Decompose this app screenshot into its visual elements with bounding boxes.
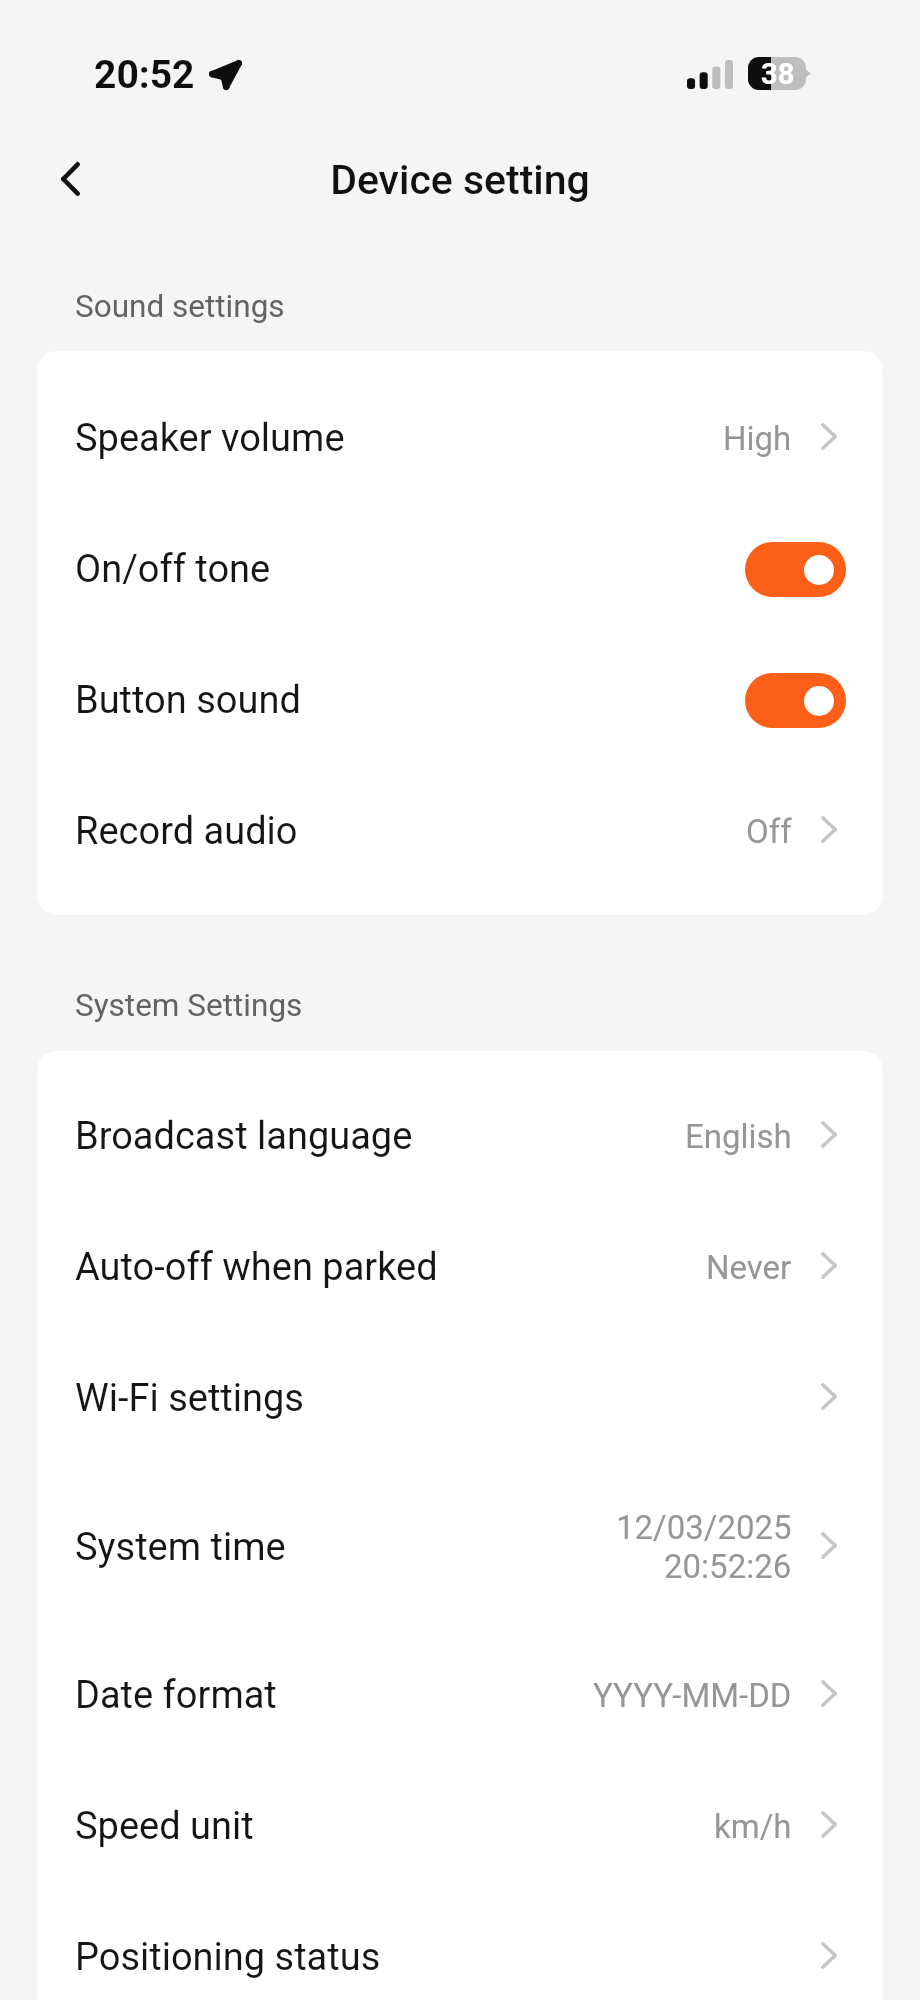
staticText: English [685, 1117, 792, 1156]
button[interactable]: On/off tone [37, 504, 883, 635]
staticText: Speaker volume [75, 416, 345, 461]
staticText: On/off tone [75, 547, 271, 592]
staticText: Off [746, 812, 792, 851]
staticText: 20:52:26 [664, 1547, 792, 1586]
staticText: Broadcast language [75, 1114, 413, 1159]
staticText: Positioning status [75, 1935, 381, 1980]
button[interactable]: Auto-off when parked [37, 1202, 883, 1333]
button[interactable]: Wi-Fi settings [37, 1333, 883, 1464]
staticText: Record audio [75, 809, 298, 854]
staticText: Speed unit [75, 1804, 254, 1849]
button[interactable]: Back [44, 154, 96, 206]
staticText: Auto-off when parked [75, 1245, 438, 1290]
staticText: System time [75, 1525, 286, 1570]
staticText: High [723, 419, 792, 458]
staticText: Date format [75, 1673, 277, 1718]
staticText: 38 [761, 57, 795, 90]
staticText: 20:52 [94, 52, 195, 98]
button[interactable]: Speed unit [37, 1761, 883, 1892]
button[interactable]: Positioning status [37, 1892, 883, 2000]
staticText: km/h [714, 1807, 792, 1846]
button[interactable]: Broadcast language [37, 1071, 883, 1202]
staticText: Device setting [330, 156, 590, 204]
staticText: Never [706, 1248, 792, 1287]
button[interactable]: Date format [37, 1630, 883, 1761]
staticText: Wi-Fi settings [75, 1376, 304, 1421]
button[interactable]: Record audio [37, 766, 883, 897]
button[interactable]: Button sound switch, on [745, 673, 846, 728]
staticText: YYYY-MM-DD [593, 1676, 792, 1715]
staticText: System Settings [75, 987, 303, 1024]
staticText: Button sound [75, 678, 301, 723]
staticText: 12/03/2025 [616, 1508, 792, 1547]
staticText: Sound settings [75, 288, 285, 325]
button[interactable]: On/off tone switch, on [745, 542, 846, 597]
button[interactable]: System time [37, 1464, 883, 1630]
button[interactable]: Speaker volume [37, 373, 883, 504]
button[interactable]: Button sound [37, 635, 883, 766]
